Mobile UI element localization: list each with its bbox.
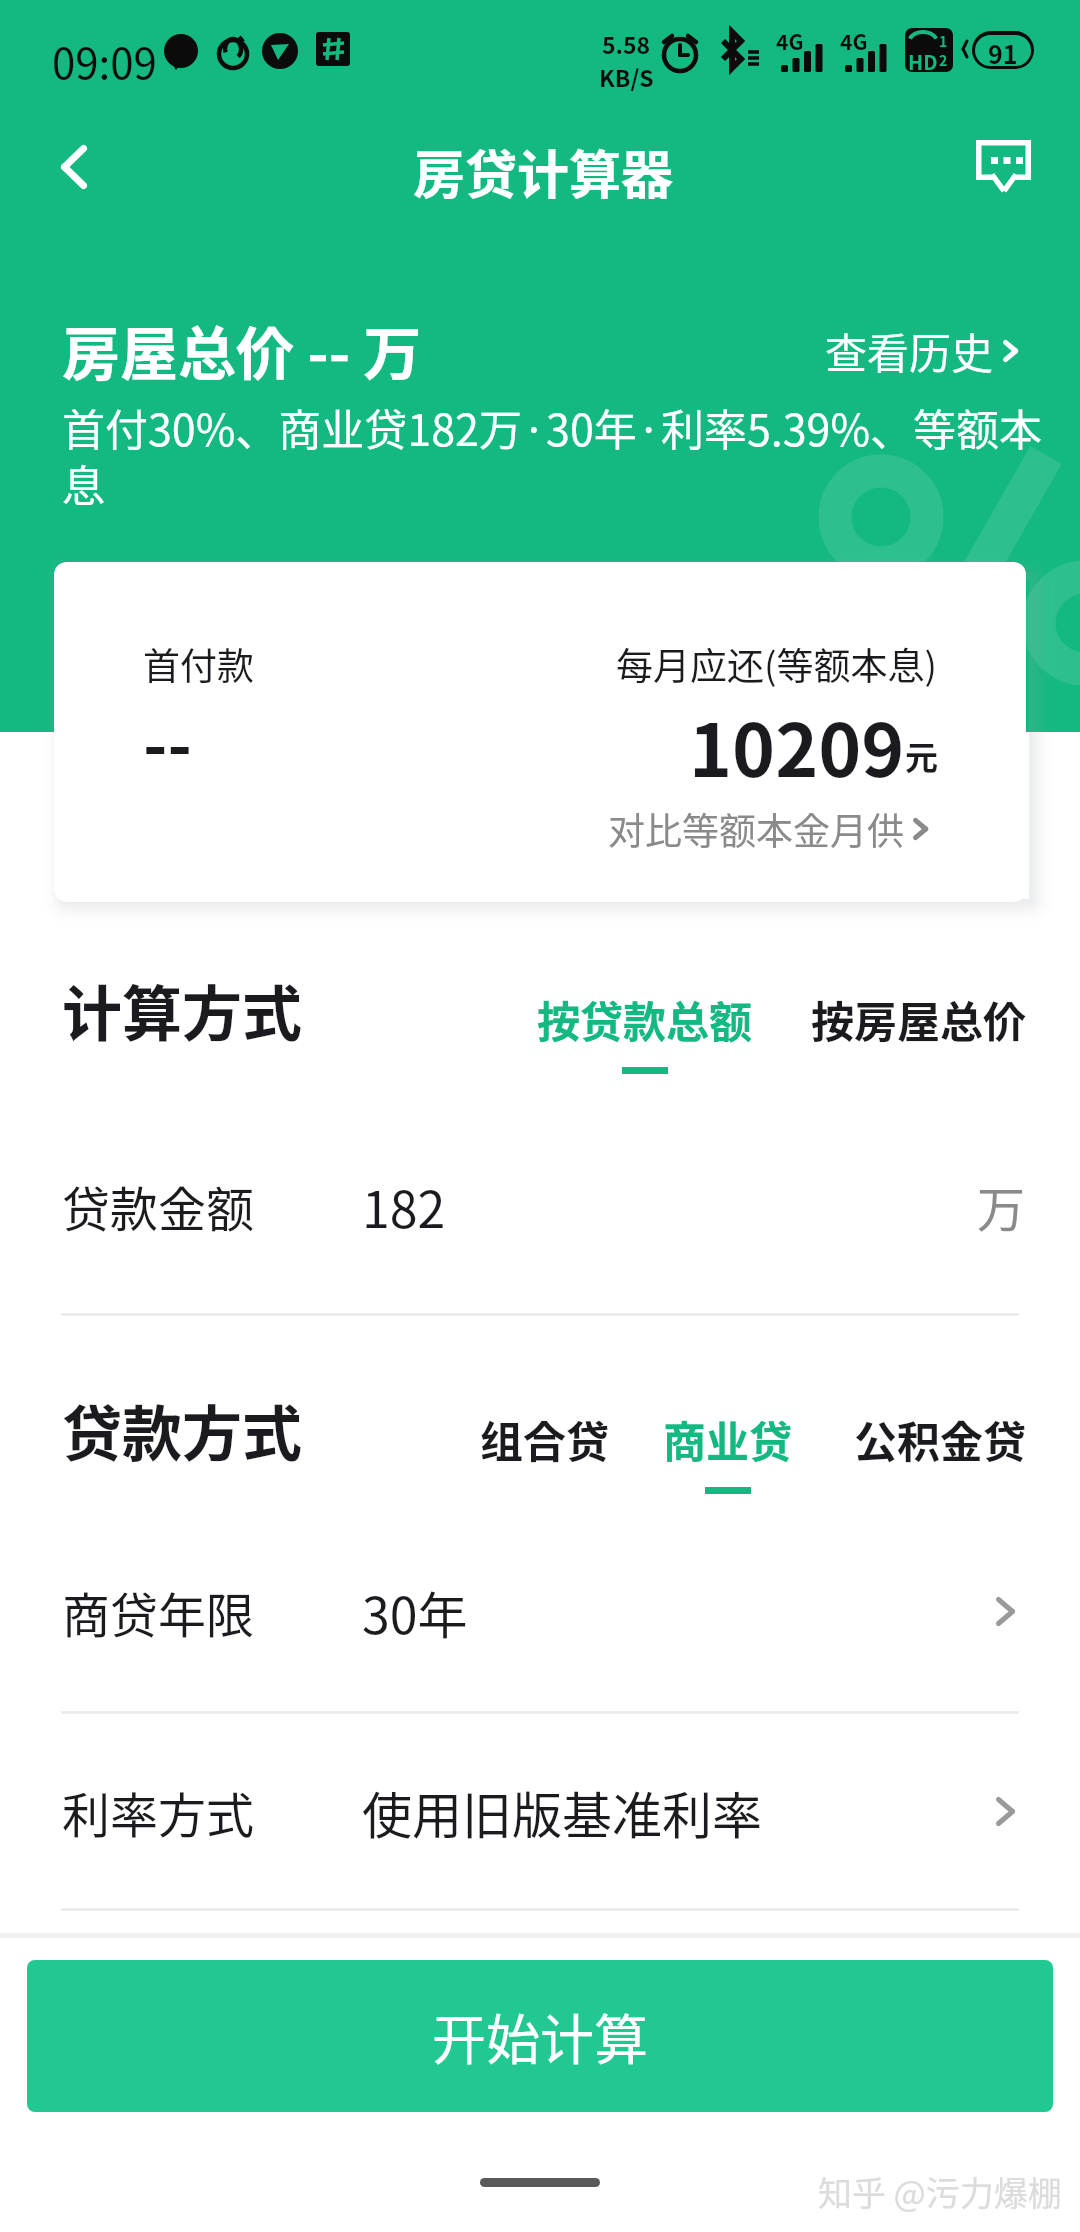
staticText: KB/S xyxy=(599,60,654,93)
staticText: 91 xyxy=(988,35,1018,66)
button[interactable]: 贷款金额 xyxy=(0,1133,1080,1278)
button[interactable]: 组合贷 xyxy=(480,1408,609,1494)
staticText: 贷款金额 xyxy=(62,1171,255,1241)
staticText: 5.58 xyxy=(602,27,651,60)
button[interactable]: Back xyxy=(27,123,123,219)
button[interactable]: 利率方式 xyxy=(0,1739,1080,1884)
staticText: 房贷计算器 xyxy=(413,134,674,209)
staticText: 首付款 xyxy=(143,637,254,691)
staticText: 按贷款总额 xyxy=(537,988,752,1050)
staticText: 知乎 @污力爆棚 xyxy=(818,2167,1062,2216)
staticText: -- xyxy=(143,692,192,788)
staticText: 1 xyxy=(939,31,948,51)
staticText: 10209 xyxy=(689,692,905,798)
staticText: 2 xyxy=(939,50,948,70)
staticText: 4G xyxy=(840,26,868,56)
staticText: 182 xyxy=(362,1170,446,1242)
staticText: 30年 xyxy=(362,1576,468,1648)
staticText: 对比等额本金月供 xyxy=(608,802,904,856)
staticText: 万 xyxy=(977,1171,1026,1241)
button[interactable]: 商贷年限 xyxy=(0,1539,1080,1684)
staticText: 计算方式 xyxy=(62,966,302,1053)
staticText: 查看历史 xyxy=(825,320,994,381)
staticText: 09:09 xyxy=(52,30,157,91)
staticText: 4G xyxy=(776,26,804,56)
button[interactable]: 商业贷 xyxy=(663,1408,792,1494)
button[interactable]: 按房屋总价 xyxy=(811,988,1026,1074)
button[interactable]: 公积金贷 xyxy=(854,1408,1026,1494)
staticText: 商业贷 xyxy=(663,1408,792,1470)
staticText: 商贷年限 xyxy=(62,1577,255,1647)
staticText: 每月应还(等额本息) xyxy=(616,637,938,691)
staticText: 组合贷 xyxy=(480,1408,609,1470)
staticText: 首付30%、商业贷182万·30年·利率5.39%、等额本息 xyxy=(62,396,1047,514)
button[interactable]: 按贷款总额 xyxy=(537,988,752,1074)
staticText: 开始计算 xyxy=(432,1997,648,2075)
staticText: 使用旧版基准利率 xyxy=(362,1776,762,1848)
button[interactable]: 对比等额本金月供 xyxy=(608,802,936,856)
staticText: HD xyxy=(908,47,938,72)
button[interactable]: 开始计算 xyxy=(27,1960,1053,2112)
staticText: 利率方式 xyxy=(62,1777,255,1847)
button[interactable]: Feedback xyxy=(962,118,1058,214)
staticText: 贷款方式 xyxy=(62,1386,302,1473)
button[interactable]: 查看历史 xyxy=(825,320,1026,381)
staticText: 按房屋总价 xyxy=(811,988,1026,1050)
staticText: 元 xyxy=(905,732,938,780)
staticText: 房屋总价 -- 万 xyxy=(62,308,422,392)
staticText: 公积金贷 xyxy=(854,1408,1026,1470)
